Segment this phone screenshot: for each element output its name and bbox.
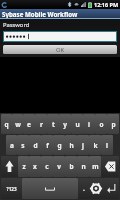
button[interactable]: e — [23, 114, 35, 134]
button[interactable]: l — [101, 135, 113, 155]
staticText: j — [82, 141, 84, 150]
staticText: u — [75, 120, 80, 129]
staticText: 12:16 PM — [94, 1, 119, 8]
staticText: ?123 — [6, 186, 17, 192]
button[interactable]: n — [77, 156, 89, 177]
button[interactable]: o — [95, 114, 107, 134]
button[interactable]: c — [41, 156, 53, 177]
button[interactable]: v — [53, 156, 65, 177]
button[interactable]: OK — [3, 45, 117, 54]
button[interactable]: Space — [22, 178, 78, 199]
button[interactable]: z — [18, 156, 29, 177]
staticText: q — [4, 120, 9, 129]
button[interactable]: g — [53, 135, 65, 155]
button[interactable]: Shift — [1, 156, 18, 177]
staticText: i — [88, 120, 90, 129]
button[interactable]: ?123 — [1, 178, 22, 199]
button[interactable]: p — [107, 114, 119, 134]
button[interactable]: s — [17, 135, 29, 155]
staticText: n — [81, 162, 86, 171]
button[interactable]: x — [29, 156, 41, 177]
staticText: p — [111, 120, 116, 129]
button[interactable]: d — [29, 135, 41, 155]
staticText: g — [57, 141, 62, 150]
staticText: a — [10, 141, 14, 150]
button[interactable]: w — [12, 114, 23, 134]
staticText: m — [92, 162, 99, 171]
button[interactable]: q — [1, 114, 12, 134]
button[interactable]: k — [89, 135, 101, 155]
staticText: x — [33, 162, 37, 171]
staticText: e — [27, 120, 31, 129]
staticText: w — [15, 120, 21, 129]
staticText: s — [21, 141, 25, 150]
button[interactable]: j — [77, 135, 89, 155]
staticText: l — [106, 141, 108, 150]
button[interactable]: y — [59, 114, 71, 134]
staticText: h — [69, 141, 74, 150]
button[interactable]: t — [47, 114, 59, 134]
button[interactable]: Settings — [89, 178, 103, 199]
button[interactable]: a — [6, 135, 17, 155]
button[interactable]: Enter — [103, 178, 119, 199]
button[interactable]: h — [65, 135, 77, 155]
staticText: y — [63, 120, 67, 129]
staticText: o — [99, 120, 104, 129]
staticText: f — [46, 141, 49, 150]
staticText: Password — [3, 21, 30, 29]
button[interactable]: b — [65, 156, 77, 177]
button[interactable] — [4, 32, 116, 41]
button[interactable]: r — [35, 114, 47, 134]
staticText: r — [40, 120, 43, 129]
staticText: OK — [56, 46, 65, 54]
staticText: k — [93, 141, 98, 150]
button[interactable]: . — [78, 178, 89, 199]
staticText: z — [22, 162, 26, 171]
button[interactable]: f — [41, 135, 53, 155]
button[interactable]: Backspace — [101, 156, 119, 177]
staticText: c — [45, 162, 49, 171]
staticText: Sybase Mobile Workflow — [2, 10, 78, 18]
staticText: b — [69, 162, 74, 171]
staticText: v — [57, 162, 61, 171]
staticText: . — [83, 184, 85, 193]
staticText: d — [33, 141, 38, 150]
button[interactable]: i — [83, 114, 95, 134]
staticText: t — [52, 120, 55, 129]
button[interactable]: m — [89, 156, 101, 177]
button[interactable]: u — [71, 114, 83, 134]
